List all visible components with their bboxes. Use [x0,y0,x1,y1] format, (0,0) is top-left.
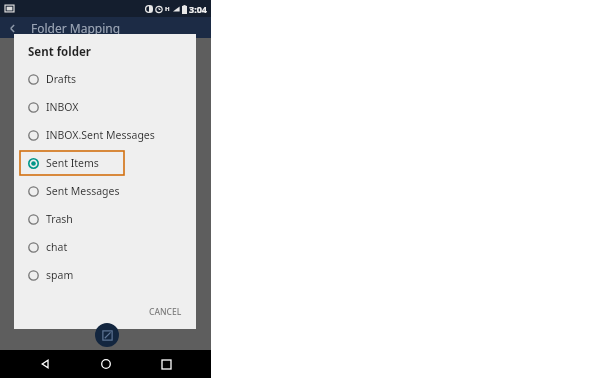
staticText: 3:04 [189,3,207,15]
staticText: INBOX.Sent Messages [46,128,155,142]
staticText: Sent Messages [46,184,120,198]
button[interactable]: chat [14,235,196,259]
staticText: INBOX [46,100,79,114]
staticText: Sent folder [28,44,91,60]
button[interactable]: CANCEL [145,303,186,321]
button[interactable]: Sent Items [20,151,124,175]
button[interactable]: Drafts [14,67,196,91]
staticText: H [165,5,170,13]
button[interactable]: Trash [14,207,196,231]
button[interactable]: Home [91,350,121,378]
button[interactable]: Back [30,350,60,378]
staticText: Trash [46,212,73,226]
button[interactable]: Navigate up [4,20,20,36]
button[interactable]: Sent Messages [14,179,196,203]
button[interactable]: INBOX [14,95,196,119]
button[interactable]: Recent apps [151,350,181,378]
button[interactable]: INBOX.Sent Messages [14,123,196,147]
staticText: Folder Mapping [31,20,121,36]
staticText: chat [46,240,68,254]
button[interactable]: spam [14,263,196,287]
staticText: Sent Items [46,156,99,170]
button[interactable]: Compose [95,323,119,347]
staticText: spam [46,268,74,282]
staticText: Drafts [46,72,77,86]
staticText: CANCEL [149,306,182,318]
